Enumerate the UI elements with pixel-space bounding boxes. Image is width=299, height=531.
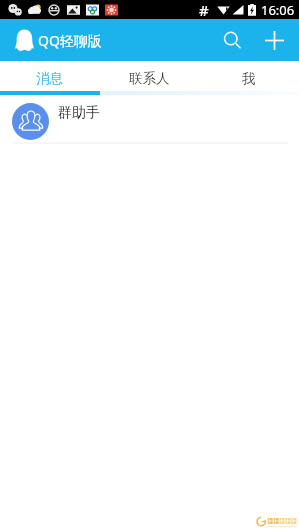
button[interactable]: 联系人	[99, 61, 199, 91]
staticText: #	[199, 0, 209, 19]
staticText: 16:06	[261, 1, 295, 19]
staticText: 我	[242, 70, 256, 87]
staticText: 联系人	[129, 70, 170, 87]
button[interactable]: 我	[199, 61, 299, 91]
button[interactable]: 群助手	[0, 95, 299, 142]
staticText: 群助手	[58, 104, 100, 122]
button[interactable]: Add	[253, 19, 295, 61]
button[interactable]: Search	[211, 19, 253, 61]
staticText: QQ轻聊版	[38, 31, 102, 50]
staticText: 消息	[36, 70, 63, 87]
button[interactable]: 消息	[0, 61, 99, 91]
